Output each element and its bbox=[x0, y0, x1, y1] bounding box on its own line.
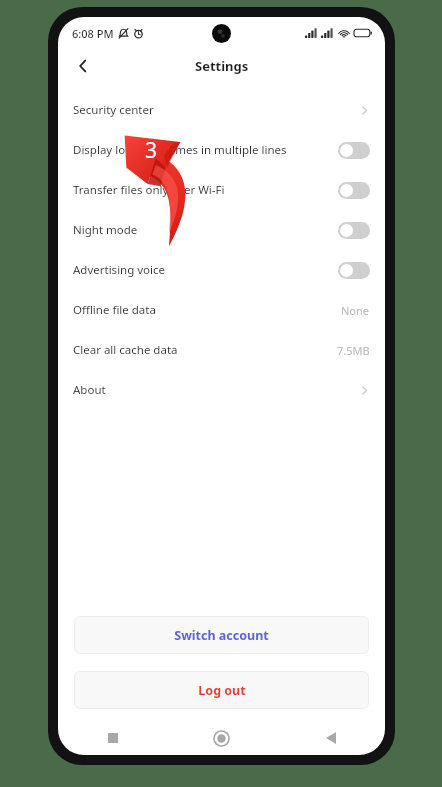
staticText: Log out bbox=[198, 682, 246, 699]
button[interactable]: Night mode bbox=[58, 210, 385, 250]
staticText: Settings bbox=[195, 57, 249, 75]
staticText: Advertising voice bbox=[73, 262, 166, 278]
button[interactable]: Switch account bbox=[74, 616, 369, 654]
staticText: 7.5MB bbox=[337, 343, 370, 358]
staticText: 6:08 PM bbox=[72, 26, 114, 41]
staticText: Transfer files only over Wi-Fi bbox=[73, 182, 225, 198]
button[interactable]: Log out bbox=[74, 671, 369, 709]
staticText: Security center bbox=[73, 102, 154, 118]
button[interactable]: Display long file names in multiple line… bbox=[58, 130, 385, 170]
button[interactable]: Security center bbox=[58, 90, 385, 130]
staticText: Clear all cache data bbox=[73, 342, 178, 358]
button[interactable]: Toggle Advertising voice bbox=[338, 262, 370, 279]
staticText: Switch account bbox=[174, 627, 269, 644]
button[interactable]: Recents bbox=[58, 721, 167, 755]
staticText: 3 bbox=[145, 136, 158, 165]
button[interactable]: Advertising voice bbox=[58, 250, 385, 290]
button[interactable]: Back bbox=[66, 49, 100, 83]
staticText: None bbox=[341, 303, 370, 318]
button[interactable]: Back bbox=[276, 721, 385, 755]
button[interactable]: Home bbox=[167, 721, 276, 755]
button[interactable]: Toggle Transfer files only over Wi-Fi bbox=[338, 182, 370, 199]
button[interactable]: Clear all cache data bbox=[58, 330, 385, 370]
staticText: Offline file data bbox=[73, 302, 156, 318]
button[interactable]: Toggle Night mode bbox=[338, 222, 370, 239]
staticText: Night mode bbox=[73, 222, 138, 238]
button[interactable]: Toggle Display long file names in multip… bbox=[338, 142, 370, 159]
button[interactable]: About bbox=[58, 370, 385, 410]
staticText: About bbox=[73, 382, 106, 398]
staticText: Display long file names in multiple line… bbox=[73, 142, 287, 158]
button[interactable]: Offline file data bbox=[58, 290, 385, 330]
button[interactable]: Transfer files only over Wi-Fi bbox=[58, 170, 385, 210]
